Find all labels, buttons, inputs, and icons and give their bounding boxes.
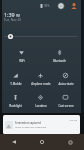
staticText: WiFi	[19, 59, 25, 63]
staticText: Tue, Nov 20	[4, 18, 21, 22]
button[interactable]: Flashlight	[3, 90, 28, 113]
button[interactable]: User profile	[70, 2, 78, 10]
button[interactable]: T-Mobile	[3, 68, 28, 90]
button[interactable]: Cast screen	[53, 90, 78, 113]
staticText: 1:39	[4, 11, 15, 18]
button[interactable]: WiFi	[3, 45, 40, 68]
staticText: 98%	[44, 4, 50, 8]
staticText: PM	[16, 14, 20, 18]
staticText: Airplane mode	[31, 82, 51, 86]
staticText: Auto-rotate	[58, 82, 74, 86]
button[interactable]: Brightness	[3, 33, 78, 40]
button[interactable]: Auto-rotate	[53, 68, 78, 90]
staticText: Location	[35, 104, 47, 108]
staticText: Bluetooth	[53, 59, 66, 63]
staticText: Cast screen	[58, 104, 74, 108]
button[interactable]: Settings	[57, 2, 65, 10]
staticText: Touch to view your screenshot.	[15, 126, 47, 129]
button[interactable]: Location	[28, 90, 53, 113]
staticText: 1:39 PM	[69, 119, 78, 122]
button[interactable]: Home	[28, 134, 56, 150]
button[interactable]: Recent apps	[56, 134, 84, 150]
button[interactable]: Airplane mode	[28, 68, 53, 90]
staticText: Flashlight	[9, 104, 22, 108]
staticText: T-Mobile	[10, 82, 22, 86]
button[interactable]: Back	[0, 134, 28, 150]
staticText: Screenshot captured.	[15, 121, 42, 125]
button[interactable]: Screenshot captured.	[3, 115, 80, 134]
button[interactable]: Bluetooth	[40, 45, 78, 68]
